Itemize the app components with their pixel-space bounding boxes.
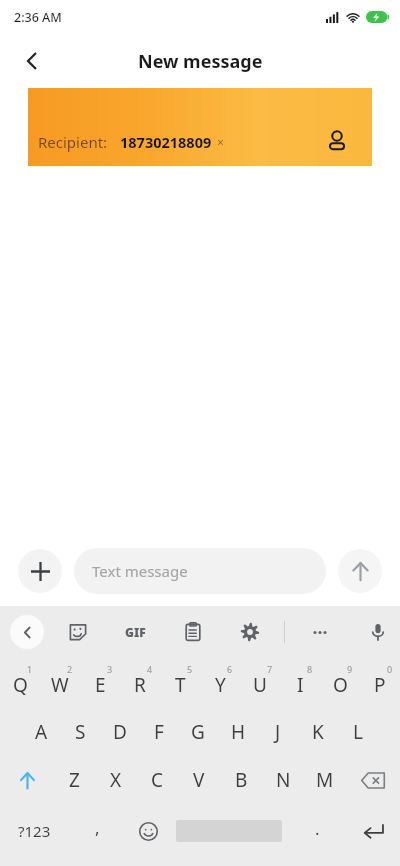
staticText: L bbox=[353, 719, 363, 745]
button[interactable]: Shift bbox=[0, 756, 54, 804]
button[interactable]: Voice input bbox=[361, 615, 395, 649]
staticText: K bbox=[312, 719, 324, 745]
button[interactable]: Q bbox=[0, 658, 40, 708]
button[interactable]: Stickers bbox=[61, 615, 95, 649]
staticText: 7 bbox=[267, 663, 273, 675]
staticText: H bbox=[231, 719, 246, 745]
button[interactable]: B bbox=[220, 756, 262, 804]
button[interactable]: Send bbox=[338, 549, 382, 593]
button[interactable]: Contacts bbox=[318, 122, 356, 160]
button[interactable]: J bbox=[258, 708, 298, 756]
button[interactable]: Clipboard bbox=[176, 615, 210, 649]
staticText: , bbox=[95, 816, 100, 839]
button[interactable]: D bbox=[100, 708, 139, 756]
staticText: Recipient: bbox=[38, 132, 108, 152]
button[interactable]: Y bbox=[200, 658, 240, 708]
button[interactable]: S bbox=[61, 708, 100, 756]
button[interactable]: Backspace bbox=[346, 756, 400, 804]
staticText: New message bbox=[138, 49, 263, 74]
staticText: J bbox=[275, 719, 281, 745]
button[interactable]: V bbox=[178, 756, 220, 804]
staticText: ?123 bbox=[18, 821, 51, 841]
button[interactable]: L bbox=[338, 708, 378, 756]
staticText: M bbox=[316, 767, 334, 793]
staticText: I bbox=[297, 672, 304, 698]
staticText: F bbox=[154, 719, 164, 745]
button[interactable]: . bbox=[288, 804, 346, 858]
button[interactable]: U bbox=[240, 658, 280, 708]
staticText: R bbox=[134, 672, 146, 698]
button[interactable]: T bbox=[160, 658, 200, 708]
staticText: X bbox=[110, 767, 122, 793]
button[interactable]: Enter bbox=[346, 804, 400, 858]
button[interactable]: P bbox=[360, 658, 400, 708]
staticText: Z bbox=[69, 767, 80, 793]
staticText: GIF bbox=[125, 624, 146, 640]
button[interactable]: W bbox=[40, 658, 80, 708]
button[interactable]: GIF bbox=[116, 613, 154, 651]
staticText: 2:36 AM bbox=[14, 9, 62, 26]
staticText: 0 bbox=[387, 663, 393, 675]
button[interactable]: Emoji bbox=[126, 804, 170, 858]
staticText: T bbox=[175, 672, 186, 698]
button[interactable]: R bbox=[120, 658, 160, 708]
button[interactable]: Recipient: bbox=[28, 88, 372, 166]
button[interactable]: Text message bbox=[74, 548, 326, 594]
button[interactable]: H bbox=[218, 708, 258, 756]
staticText: A bbox=[35, 719, 48, 745]
staticText: G bbox=[191, 719, 205, 745]
staticText: P bbox=[374, 672, 386, 698]
button[interactable]: N bbox=[262, 756, 304, 804]
staticText: . bbox=[315, 817, 320, 840]
button[interactable]: Settings bbox=[233, 615, 267, 649]
staticText: 1 bbox=[27, 663, 33, 675]
button[interactable]: More options bbox=[303, 615, 337, 649]
staticText: U bbox=[253, 672, 267, 698]
staticText: B bbox=[235, 767, 248, 793]
staticText: 2 bbox=[67, 663, 73, 675]
button[interactable]: M bbox=[304, 756, 346, 804]
staticText: S bbox=[75, 719, 86, 745]
button[interactable]: C bbox=[136, 756, 178, 804]
button[interactable]: X bbox=[95, 756, 136, 804]
button[interactable]: G bbox=[178, 708, 218, 756]
button[interactable]: A bbox=[22, 708, 61, 756]
button[interactable]: I bbox=[280, 658, 320, 708]
staticText: O bbox=[333, 672, 348, 698]
staticText: N bbox=[276, 767, 291, 793]
staticText: E bbox=[95, 672, 106, 698]
button[interactable]: Add attachment bbox=[18, 549, 62, 593]
button[interactable]: Z bbox=[54, 756, 95, 804]
button[interactable]: F bbox=[139, 708, 178, 756]
staticText: D bbox=[113, 719, 127, 745]
button[interactable]: K bbox=[298, 708, 338, 756]
button[interactable]: E bbox=[80, 658, 120, 708]
staticText: V bbox=[193, 767, 205, 793]
staticText: 6 bbox=[227, 663, 233, 675]
staticText: 8 bbox=[307, 663, 313, 675]
button[interactable]: Close toolbar bbox=[10, 615, 44, 649]
staticText: 18730218809 bbox=[120, 132, 212, 152]
staticText: 9 bbox=[347, 663, 353, 675]
staticText: 5 bbox=[187, 663, 193, 675]
staticText: 4 bbox=[147, 663, 153, 675]
staticText: W bbox=[51, 672, 69, 698]
staticText: 3 bbox=[107, 663, 113, 675]
button[interactable]: O bbox=[320, 658, 360, 708]
staticText: C bbox=[151, 767, 164, 793]
staticText: Q bbox=[13, 672, 28, 698]
staticText: Y bbox=[215, 672, 226, 698]
button[interactable]: , bbox=[68, 804, 126, 858]
button[interactable]: × bbox=[217, 134, 224, 150]
staticText: Text message bbox=[92, 561, 188, 581]
button[interactable]: ?123 bbox=[0, 804, 68, 858]
button[interactable]: Back bbox=[8, 37, 56, 85]
